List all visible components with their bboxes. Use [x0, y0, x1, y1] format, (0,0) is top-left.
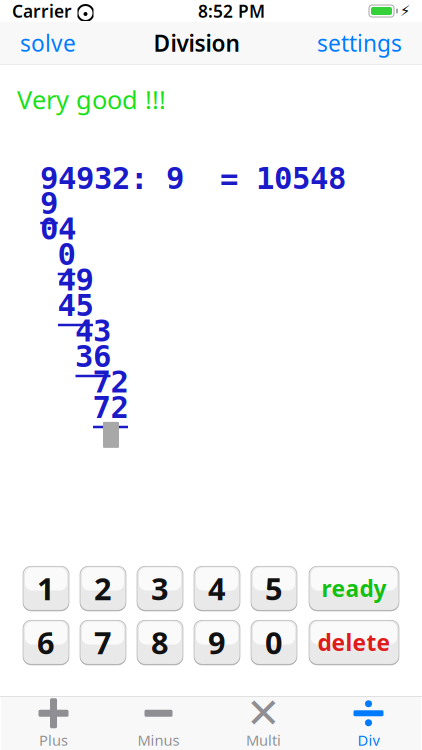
staticText: 72 [92, 364, 128, 399]
button[interactable]: 9 [192, 618, 242, 666]
staticText: 0 [265, 622, 283, 663]
staticText: Division [153, 28, 239, 58]
staticText: delete [317, 627, 390, 657]
staticText: 43 [75, 313, 111, 348]
button[interactable]: 7 [78, 618, 128, 666]
staticText: 04 [40, 211, 76, 246]
staticText: ready [321, 573, 386, 603]
button[interactable]: 3 [135, 564, 185, 612]
staticText: Multi [246, 730, 281, 750]
button[interactable]: 4 [192, 564, 242, 612]
button[interactable]: 5 [249, 564, 299, 612]
staticText: solve [20, 28, 76, 58]
staticText: 3 [151, 568, 169, 609]
button[interactable]: 6 [21, 618, 71, 666]
staticText: 5 [265, 568, 283, 609]
staticText: 0 [57, 237, 75, 272]
staticText: 94932: 9 = 10548 [40, 161, 346, 196]
staticText: 7 [94, 622, 112, 663]
staticText: 8 [151, 622, 169, 663]
staticText: 45 [57, 288, 93, 323]
staticText: 4 [208, 568, 226, 609]
staticText: 49 [57, 262, 93, 297]
staticText: Div [357, 730, 379, 750]
staticText: ✕ [246, 690, 281, 737]
button[interactable]: solve [12, 23, 84, 63]
button[interactable]: delete [307, 618, 401, 666]
button[interactable]: ✕ [211, 697, 316, 749]
button[interactable]: 8 [135, 618, 185, 666]
staticText: 2 [94, 568, 112, 609]
button[interactable]: Div [316, 697, 421, 749]
staticText: ⚡︎ [400, 3, 410, 19]
button[interactable]: Plus [1, 697, 106, 749]
staticText: 72 [92, 390, 128, 425]
button[interactable]: 2 [78, 564, 128, 612]
button[interactable]: settings [309, 23, 410, 63]
staticText: 1 [37, 568, 55, 609]
button[interactable]: Minus [106, 697, 211, 749]
staticText: 9 [208, 622, 226, 663]
staticText: 9 [40, 186, 58, 221]
staticText: Very good !!! [17, 83, 166, 116]
staticText: 6 [37, 622, 55, 663]
staticText: Plus [39, 730, 68, 750]
button[interactable]: ready [307, 564, 401, 612]
staticText: Carrier [12, 0, 72, 22]
staticText: Minus [137, 730, 179, 750]
button[interactable]: 0 [249, 618, 299, 666]
staticText: 8:52 PM [198, 0, 265, 22]
button[interactable]: 1 [21, 564, 71, 612]
staticText: settings [317, 28, 402, 58]
staticText: 36 [75, 339, 111, 374]
